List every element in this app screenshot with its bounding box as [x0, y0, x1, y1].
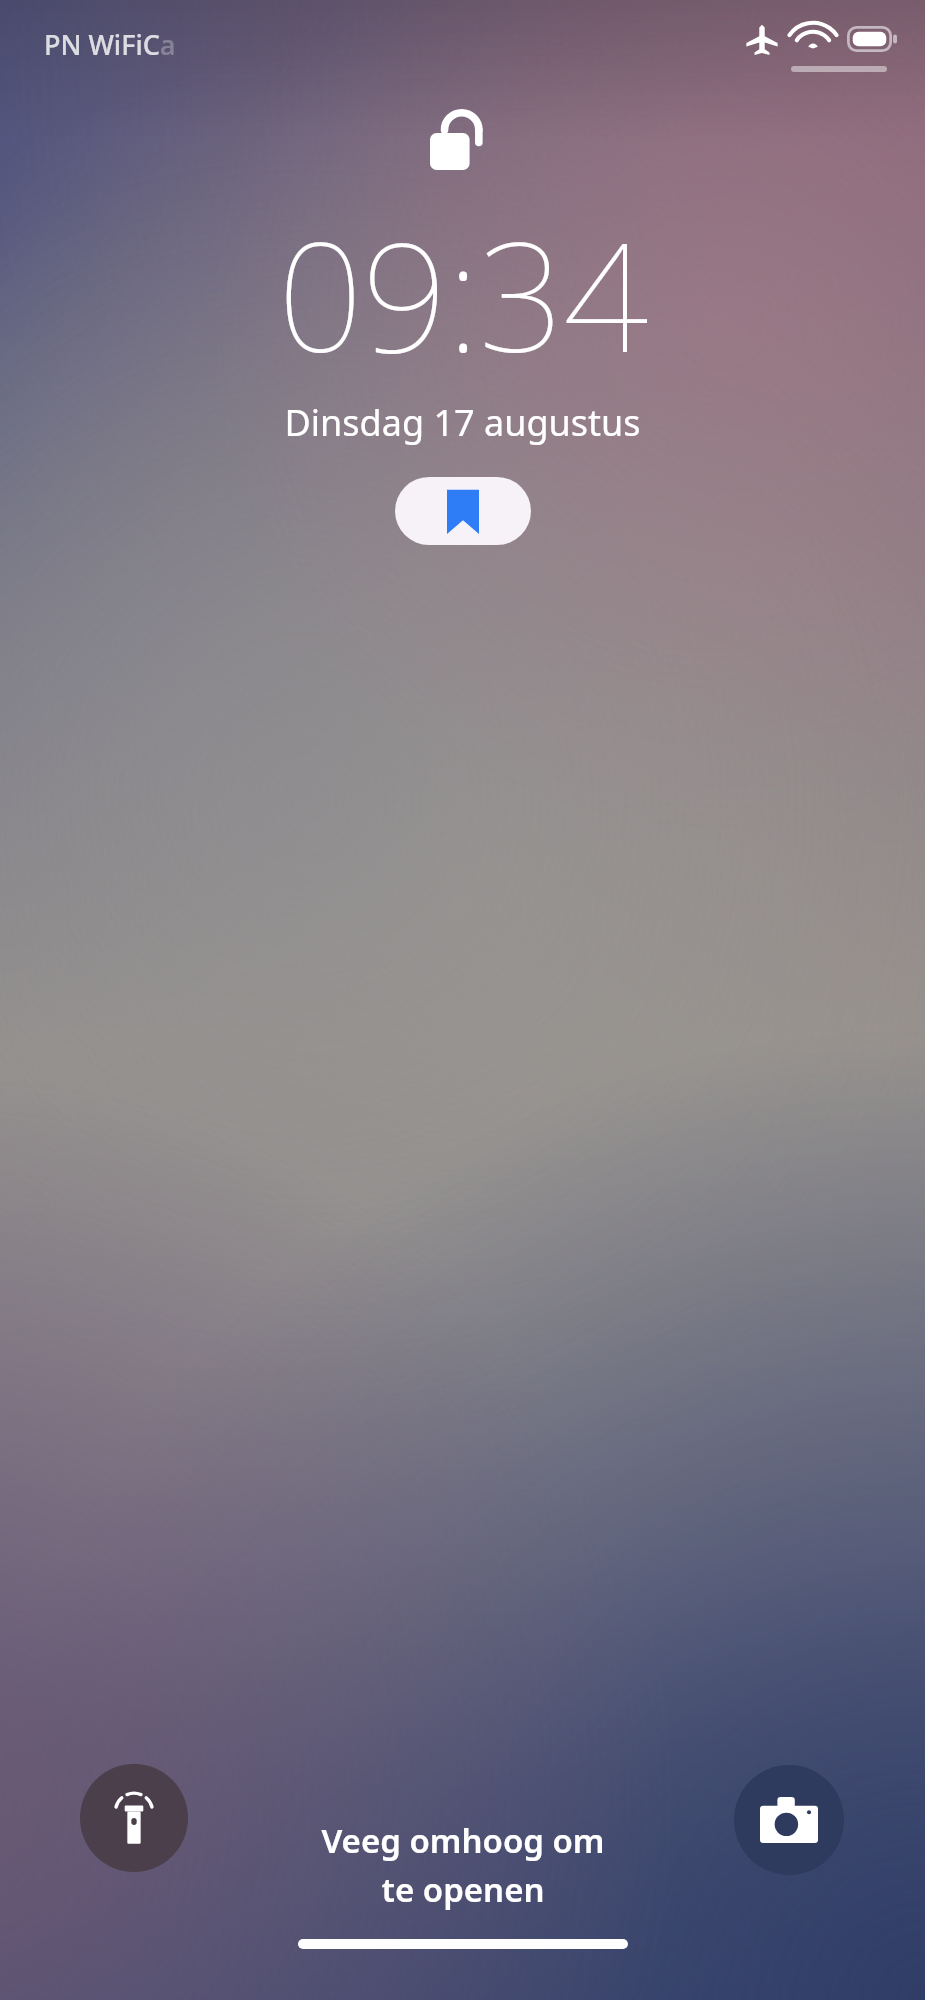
button[interactable]: Veeg omhoog om	[0, 1818, 925, 1912]
staticText: PN WiFiC	[44, 26, 160, 63]
button[interactable]: Flashlight	[80, 1764, 188, 1872]
staticText: 09:34	[277, 192, 648, 396]
button[interactable]	[395, 477, 531, 545]
other: Unlocked	[430, 96, 496, 170]
button[interactable]: Camera	[734, 1765, 844, 1875]
staticText: Veeg omhoog om	[321, 1818, 605, 1863]
staticText: a	[160, 26, 176, 63]
staticText: Dinsdag 17 augustus	[284, 398, 641, 447]
staticText: te openen	[381, 1867, 545, 1912]
